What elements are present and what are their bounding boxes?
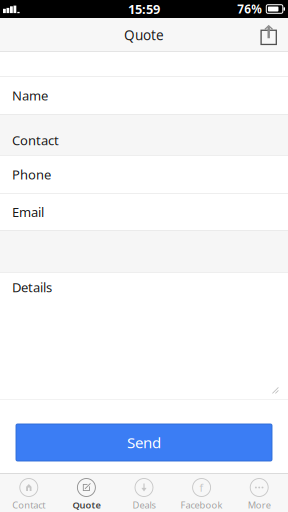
button[interactable]: More bbox=[230, 473, 288, 512]
button[interactable]: Quote bbox=[58, 473, 115, 512]
staticText: Name bbox=[12, 86, 48, 104]
button[interactable]: Share bbox=[249, 19, 288, 51]
staticText: Quote bbox=[124, 26, 164, 44]
staticText: Email bbox=[12, 203, 44, 221]
staticText: More bbox=[248, 498, 271, 511]
staticText: Contact bbox=[12, 498, 45, 511]
button[interactable]: Name bbox=[0, 76, 288, 114]
staticText: Details bbox=[12, 278, 52, 296]
button[interactable]: Contact bbox=[0, 473, 58, 512]
button[interactable]: f bbox=[173, 473, 230, 512]
button[interactable]: Deals bbox=[115, 473, 173, 512]
staticText: 76% bbox=[237, 1, 262, 17]
button[interactable]: Send bbox=[16, 424, 272, 461]
button[interactable]: Phone bbox=[0, 155, 288, 193]
staticText: f bbox=[200, 480, 204, 495]
staticText: Facebook bbox=[181, 498, 223, 511]
button[interactable]: Details bbox=[0, 272, 288, 400]
staticText: 15:59 bbox=[128, 0, 160, 18]
staticText: Send bbox=[127, 432, 161, 453]
staticText: Contact bbox=[12, 131, 59, 149]
staticText: Quote bbox=[72, 498, 100, 511]
staticText: Phone bbox=[12, 165, 51, 183]
staticText: Deals bbox=[132, 498, 155, 511]
button[interactable]: Email bbox=[0, 193, 288, 230]
